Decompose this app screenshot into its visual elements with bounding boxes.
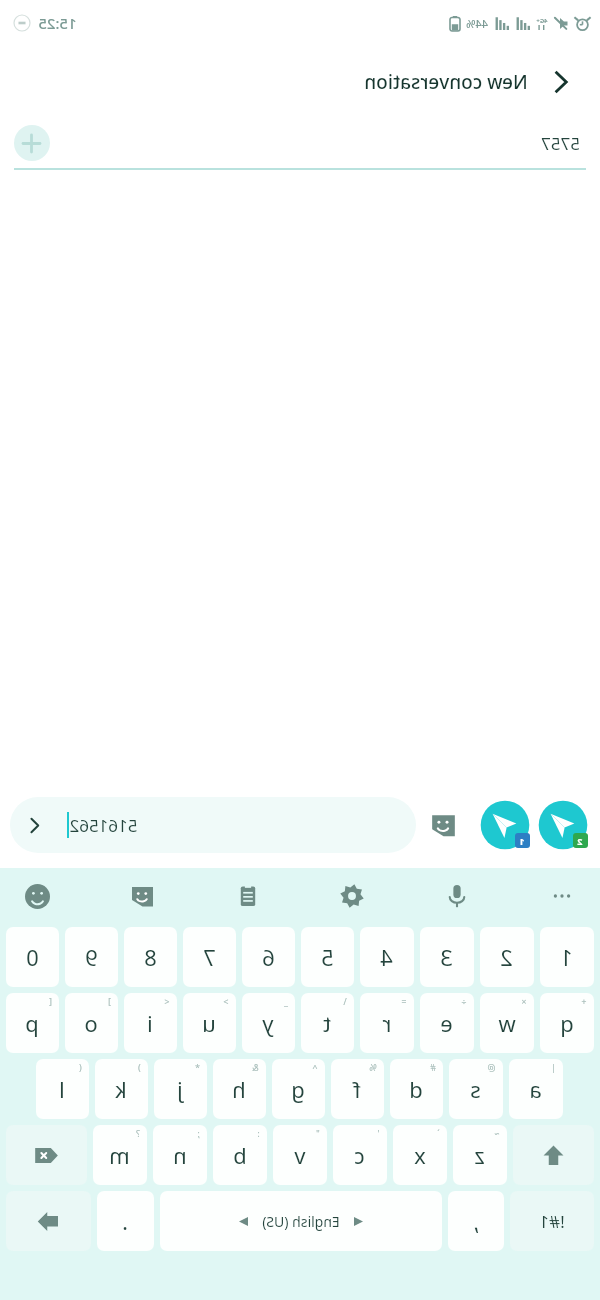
staticText: % xyxy=(369,1061,377,1073)
staticText: o xyxy=(84,1008,98,1038)
button[interactable]: m xyxy=(93,1125,147,1185)
staticText: ) xyxy=(138,1061,141,1073)
button[interactable]: n xyxy=(153,1125,207,1185)
button[interactable]: z xyxy=(453,1125,507,1185)
staticText: = xyxy=(401,995,407,1007)
staticText: ~ xyxy=(494,1127,500,1139)
staticText: + xyxy=(581,995,587,1007)
button[interactable]: Stickers xyxy=(426,807,462,843)
button[interactable]: 2 xyxy=(480,927,534,987)
staticText: g xyxy=(291,1074,305,1104)
button[interactable]: u xyxy=(183,993,236,1053)
button[interactable]: h xyxy=(213,1059,266,1119)
button[interactable]: 7 xyxy=(183,927,236,987)
staticText: 5161562 xyxy=(69,814,138,837)
button[interactable]: 6 xyxy=(242,927,295,987)
button[interactable]: 3 xyxy=(420,927,474,987)
staticText: 4 xyxy=(380,942,393,972)
staticText: z xyxy=(474,1140,485,1170)
staticText: 15:25 xyxy=(38,13,77,33)
button[interactable]: y xyxy=(242,993,295,1053)
button[interactable]: f xyxy=(331,1059,384,1119)
button[interactable]: d xyxy=(390,1059,443,1119)
button[interactable]: Back xyxy=(538,59,584,105)
staticText: 1 xyxy=(560,942,573,972)
staticText: ; xyxy=(197,1127,200,1139)
staticText: h xyxy=(232,1074,246,1104)
staticText: × xyxy=(521,995,527,1007)
button[interactable]: 5 xyxy=(301,927,354,987)
staticText: . xyxy=(122,1206,128,1236)
staticText: 8 xyxy=(144,942,157,972)
button[interactable]: Send with SIM 1 xyxy=(478,798,532,852)
staticText: _ xyxy=(284,995,288,1007)
staticText: 7 xyxy=(203,942,216,972)
button[interactable]: q xyxy=(540,993,594,1053)
staticText: New conversation xyxy=(364,69,528,95)
staticText: : xyxy=(257,1127,260,1139)
staticText: s xyxy=(470,1074,481,1104)
button[interactable]: k xyxy=(95,1059,148,1119)
button[interactable]: g xyxy=(272,1059,325,1119)
button[interactable]: x xyxy=(393,1125,447,1185)
button[interactable]: w xyxy=(480,993,534,1053)
staticText: ` xyxy=(437,1127,440,1139)
staticText: ? xyxy=(136,1127,140,1139)
staticText: m xyxy=(109,1140,130,1170)
button[interactable]: 5161562 xyxy=(10,797,416,853)
button[interactable]: Emoji xyxy=(16,874,60,918)
staticText: ( xyxy=(79,1061,82,1073)
button[interactable]: p xyxy=(6,993,59,1053)
button[interactable]: e xyxy=(420,993,474,1053)
button[interactable]: j xyxy=(154,1059,207,1119)
other: Enter xyxy=(36,1209,61,1234)
button[interactable]: Backspace xyxy=(6,1125,87,1185)
button[interactable]: , xyxy=(448,1191,504,1251)
button[interactable]: 1 xyxy=(540,927,594,987)
button[interactable]: 9 xyxy=(65,927,118,987)
button[interactable]: 4 xyxy=(360,927,414,987)
staticText: 2 xyxy=(500,942,513,972)
button[interactable]: o xyxy=(65,993,118,1053)
button[interactable]: English (US) xyxy=(160,1191,442,1251)
button[interactable]: . xyxy=(97,1191,154,1251)
staticText: [ xyxy=(49,995,52,1007)
button[interactable]: l xyxy=(36,1059,89,1119)
button[interactable]: Add recipient xyxy=(14,125,50,161)
button[interactable]: Clipboard xyxy=(226,874,270,918)
button[interactable]: Send with SIM 2 xyxy=(536,798,590,852)
button[interactable]: r xyxy=(360,993,414,1053)
staticText: n xyxy=(173,1140,187,1170)
button[interactable]: a xyxy=(509,1059,563,1119)
staticText: ÷ xyxy=(461,995,467,1007)
button[interactable]: b xyxy=(213,1125,267,1185)
button[interactable]: s xyxy=(449,1059,503,1119)
staticText: 6 xyxy=(262,942,275,972)
button[interactable]: 8 xyxy=(124,927,177,987)
button[interactable]: Voice input xyxy=(435,874,479,918)
button[interactable]: Shift xyxy=(513,1125,594,1185)
staticText: d xyxy=(409,1074,423,1104)
staticText: j xyxy=(177,1074,183,1104)
staticText: 2 xyxy=(577,835,583,847)
button[interactable]: Stickers xyxy=(121,874,165,918)
button[interactable]: Settings xyxy=(330,874,374,918)
staticText: 4G+ xyxy=(536,17,548,25)
button[interactable]: v xyxy=(273,1125,327,1185)
button[interactable]: t xyxy=(301,993,354,1053)
staticText: c xyxy=(354,1140,365,1170)
button[interactable]: Enter xyxy=(6,1191,91,1251)
button[interactable]: More options xyxy=(540,874,584,918)
button[interactable]: 5757 xyxy=(14,118,586,168)
button[interactable]: 0 xyxy=(6,927,59,987)
other: Backspace xyxy=(33,1142,60,1169)
button[interactable]: i xyxy=(124,993,177,1053)
staticText: " xyxy=(316,1127,320,1139)
staticText: w xyxy=(498,1008,516,1038)
staticText: b xyxy=(233,1140,247,1170)
button[interactable]: !#1 xyxy=(510,1191,594,1251)
staticText: English (US) xyxy=(262,1212,340,1231)
staticText: 5757 xyxy=(541,132,580,155)
staticText: k xyxy=(115,1074,127,1104)
button[interactable]: c xyxy=(333,1125,387,1185)
